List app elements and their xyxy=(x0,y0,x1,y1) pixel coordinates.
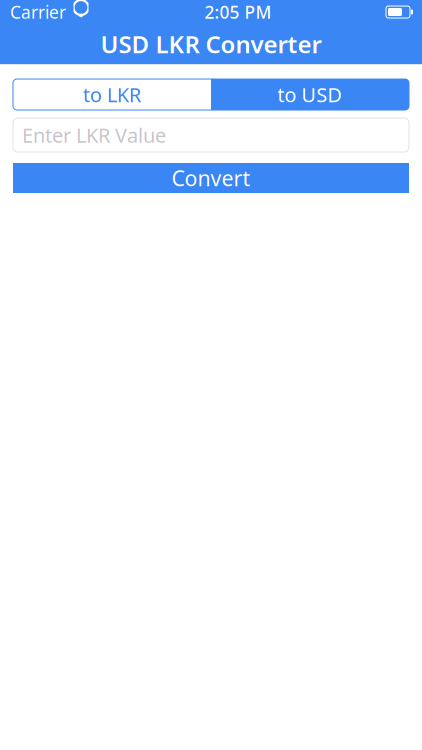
staticText: USD LKR Converter xyxy=(100,28,321,60)
staticText: Enter LKR Value xyxy=(22,122,166,148)
button[interactable]: to USD xyxy=(211,79,409,110)
staticText: to LKR xyxy=(83,81,141,108)
staticText: 2:05 PM xyxy=(204,0,271,23)
staticText: Convert xyxy=(171,164,250,192)
button[interactable]: to LKR xyxy=(13,79,211,110)
staticText: to USD xyxy=(277,81,342,108)
staticText: Carrier xyxy=(10,0,66,23)
button[interactable]: Convert xyxy=(13,163,409,193)
